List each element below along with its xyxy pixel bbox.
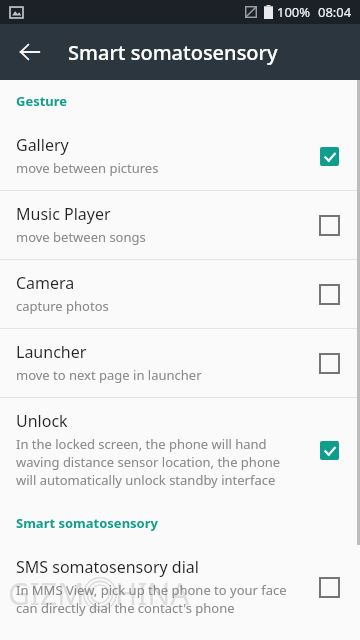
button[interactable]: Gallery	[0, 122, 360, 190]
staticText: GIZM	[8, 573, 85, 614]
staticText: HINA	[115, 573, 190, 614]
staticText: Music Player	[16, 203, 111, 225]
staticText: will automatically unlock standby interf…	[16, 471, 276, 489]
button[interactable]: Camera	[0, 260, 360, 328]
staticText: move to next page in launcher	[16, 366, 202, 384]
staticText: 08:04	[318, 3, 352, 21]
button[interactable]: Unlock	[0, 398, 360, 502]
staticText: can directly dial the contact's phone	[16, 599, 235, 617]
staticText: move between songs	[16, 228, 146, 246]
staticText: Gallery	[16, 134, 69, 156]
staticText: waving distance sensor location, the pho…	[16, 453, 281, 471]
staticText: SMS somatosensory dial	[16, 556, 199, 578]
staticText: In MMS View, pick up the phone to your f…	[16, 581, 287, 599]
staticText: capture photos	[16, 297, 109, 315]
staticText: Gesture	[16, 92, 68, 110]
staticText: Launcher	[16, 341, 87, 363]
staticText: Smart somatosensory	[68, 39, 278, 66]
button[interactable]: Launcher	[0, 329, 360, 397]
button[interactable]: SMS somatosensory dial	[0, 544, 360, 630]
staticText: Smart somatosensory	[16, 514, 158, 532]
button[interactable]: Back	[8, 30, 52, 74]
staticText: 100%	[277, 3, 311, 21]
button[interactable]: Music Player	[0, 191, 360, 259]
staticText: Camera	[16, 272, 75, 294]
staticText: In the locked screen, the phone will han…	[16, 435, 267, 453]
staticText: move between pictures	[16, 159, 159, 177]
staticText: Unlock	[16, 410, 68, 432]
